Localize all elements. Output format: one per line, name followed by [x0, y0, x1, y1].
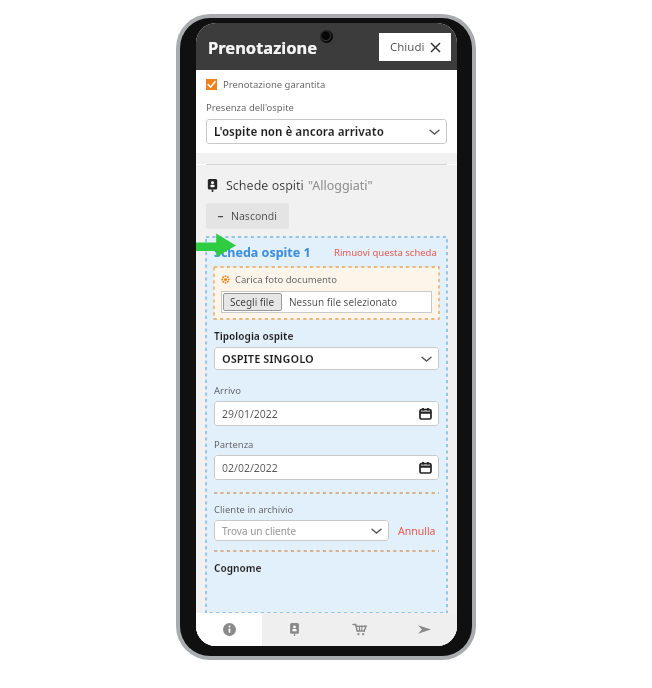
button[interactable]: Send [392, 613, 457, 646]
other: Open calendar [420, 462, 431, 473]
staticText: OSPITE SINGOLO [222, 351, 422, 366]
other: Open calendar [420, 408, 431, 419]
button[interactable]: Trova un cliente [214, 520, 389, 541]
button[interactable]: Annulla [398, 524, 436, 538]
staticText: Schede ospiti [226, 177, 308, 194]
button[interactable]: Scegli file [221, 291, 432, 313]
staticText: Partenza [214, 438, 254, 451]
button[interactable]: OSPITE SINGOLO [214, 347, 439, 370]
staticText: Trova un cliente [222, 524, 372, 538]
button[interactable]: 02/02/2022 [214, 455, 439, 480]
staticText: Tipologia ospite [214, 329, 294, 343]
staticText: Carica foto documento [235, 273, 338, 286]
button[interactable]: Chiudi [379, 33, 451, 61]
staticText: Nascondi [231, 209, 277, 223]
staticText: L'ospite non è ancora arrivato [214, 124, 430, 140]
button[interactable]: Contacts [262, 613, 327, 646]
staticText: "Alloggiati" [308, 177, 373, 194]
button[interactable]: L'ospite non è ancora arrivato [206, 119, 447, 144]
button[interactable]: Prenotazione garantita [206, 78, 326, 91]
button[interactable]: Rimuovi questa scheda [334, 246, 437, 259]
staticText: Arrivo [214, 384, 241, 397]
staticText: Scheda ospite 1 [214, 244, 311, 261]
staticText: Chiudi [390, 39, 425, 55]
staticText: 02/02/2022 [222, 461, 420, 475]
button[interactable]: Cart [327, 613, 392, 646]
staticText: Cliente in archivio [214, 503, 294, 516]
button[interactable]: Info [196, 613, 262, 646]
staticText: Cognome [214, 561, 262, 575]
button[interactable]: Nascondi [206, 203, 289, 229]
staticText: Presenza dell'ospite [206, 101, 294, 114]
staticText: Prenotazione garantita [223, 78, 326, 91]
button[interactable]: 29/01/2022 [214, 401, 439, 426]
staticText: Prenotazione [208, 36, 318, 58]
staticText: Scegli file [230, 295, 275, 309]
staticText: 29/01/2022 [222, 407, 420, 421]
staticText: Nessun file selezionato [289, 295, 397, 309]
